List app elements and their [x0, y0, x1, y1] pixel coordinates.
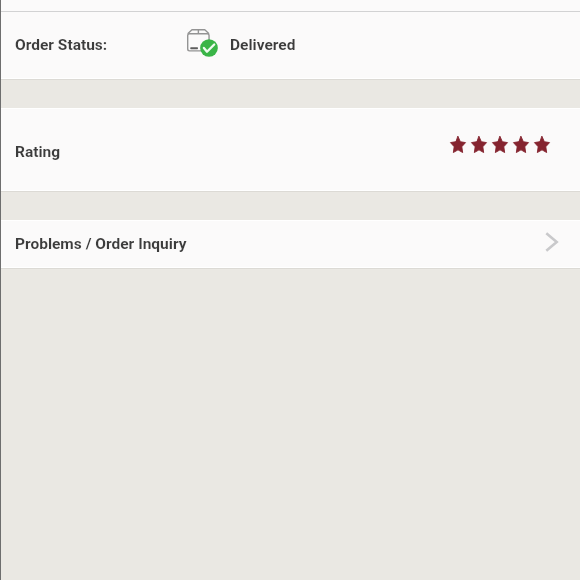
button[interactable]: Rating [0, 109, 580, 190]
staticText: Rating [15, 143, 61, 161]
staticText: Order Status: [15, 36, 108, 54]
staticText: Delivered [230, 36, 296, 54]
button[interactable]: Problems / Order Inquiry [0, 221, 580, 268]
other: Open order inquiry [540, 232, 564, 256]
staticText: Problems / Order Inquiry [15, 235, 187, 253]
button[interactable]: Order Status: [0, 0, 580, 78]
